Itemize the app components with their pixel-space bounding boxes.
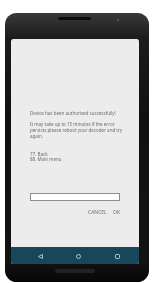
staticText: persists please reboot your decoder and … — [30, 127, 123, 133]
staticText: It may take up to 15 minutes if the erro… — [30, 121, 115, 127]
button[interactable]: CANCEL — [85, 207, 110, 218]
button[interactable]: Recent apps — [112, 251, 122, 261]
staticText: 88. Main menu — [30, 156, 62, 162]
staticText: Device has been authorised successfully! — [30, 110, 116, 116]
staticText: OK — [113, 209, 121, 216]
staticText: 77. Back — [30, 151, 48, 157]
button[interactable]: OK — [110, 207, 124, 218]
staticText: again. — [30, 133, 43, 139]
button[interactable]: Home — [73, 251, 83, 261]
button[interactable]: Back — [35, 251, 45, 261]
staticText: CANCEL — [88, 209, 107, 216]
